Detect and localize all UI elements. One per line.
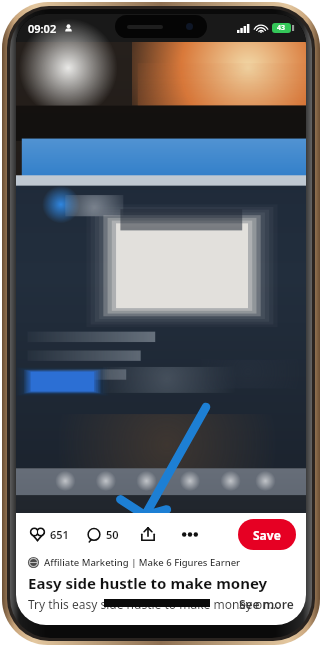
button[interactable]: 651 (28, 523, 71, 546)
staticText: Save (253, 527, 281, 543)
staticText: Affiliate Marketing | Make 6 Figures Ear… (44, 556, 241, 569)
staticText: 43 (277, 23, 286, 33)
button[interactable]: 50 (85, 523, 121, 546)
staticText: Try this easy side hustle to make money … (28, 596, 280, 612)
button[interactable]: See more (239, 596, 294, 612)
button[interactable]: More options (177, 524, 203, 545)
staticText: 09:02 (28, 21, 57, 36)
button[interactable]: Share (137, 523, 159, 545)
staticText: 651 (50, 527, 69, 542)
button[interactable]: Save (238, 519, 296, 550)
staticText: 50 (106, 527, 119, 542)
button[interactable]: Affiliate Marketing | Make 6 Figures Ear… (28, 556, 294, 569)
staticText: Easy side hustle to make money online… (28, 573, 294, 593)
